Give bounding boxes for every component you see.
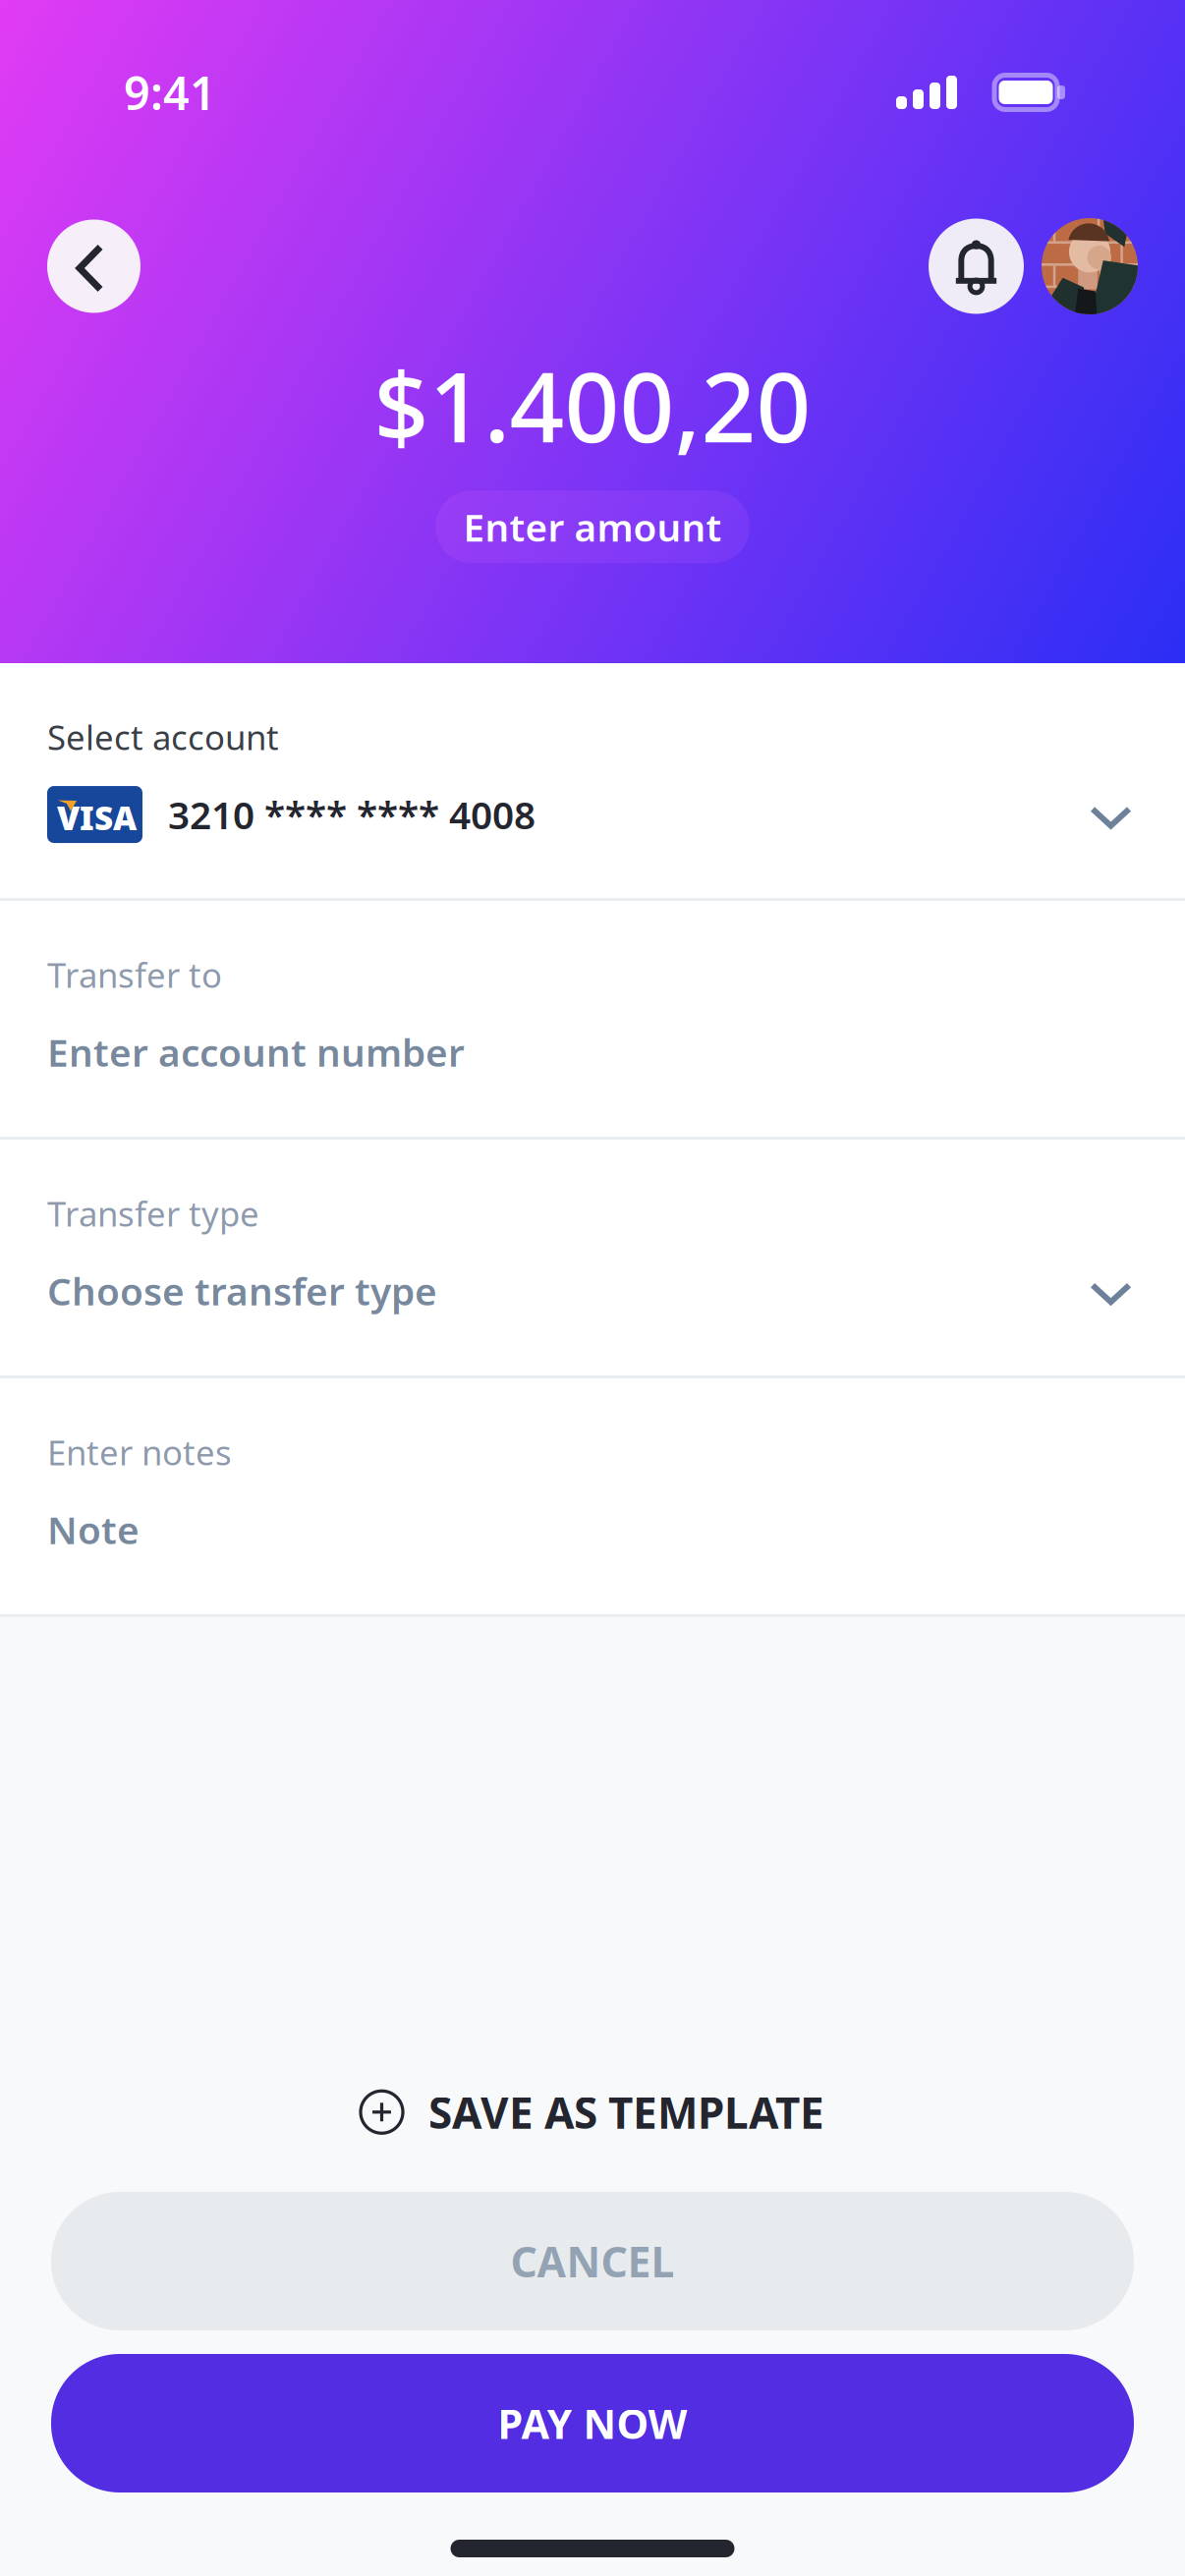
staticText: Choose transfer type [47, 1265, 437, 1316]
staticText: SAVE AS TEMPLATE [428, 2083, 824, 2141]
staticText: 9:41 [124, 62, 216, 123]
staticText: Enter account number [47, 1027, 465, 1077]
button[interactable]: Profile [1042, 218, 1138, 314]
button[interactable]: SAVE AS TEMPLATE [341, 2070, 844, 2155]
button[interactable]: Select account [0, 663, 1185, 898]
staticText: PAY NOW [498, 2396, 687, 2450]
staticText: Enter notes [47, 1429, 232, 1475]
staticText: Select account [47, 714, 279, 759]
staticText: Transfer to [47, 952, 222, 997]
staticText: Transfer type [47, 1191, 259, 1236]
button[interactable]: Notifications [929, 219, 1024, 314]
button[interactable]: PAY NOW [51, 2354, 1134, 2492]
button[interactable]: Enter amount [435, 490, 750, 563]
button[interactable]: Enter notes [0, 1378, 1185, 1614]
staticText: Note [47, 1504, 140, 1555]
button[interactable]: Transfer type [0, 1140, 1185, 1375]
staticText: 3210 **** **** 4008 [168, 789, 536, 840]
button[interactable]: Back [47, 220, 141, 313]
staticText: $1.400,20 [374, 342, 811, 469]
staticText: Enter amount [463, 502, 722, 552]
staticText: CANCEL [510, 2233, 675, 2289]
button[interactable]: Transfer to [0, 901, 1185, 1137]
staticText: VISA [57, 796, 137, 839]
button[interactable]: CANCEL [51, 2192, 1134, 2330]
